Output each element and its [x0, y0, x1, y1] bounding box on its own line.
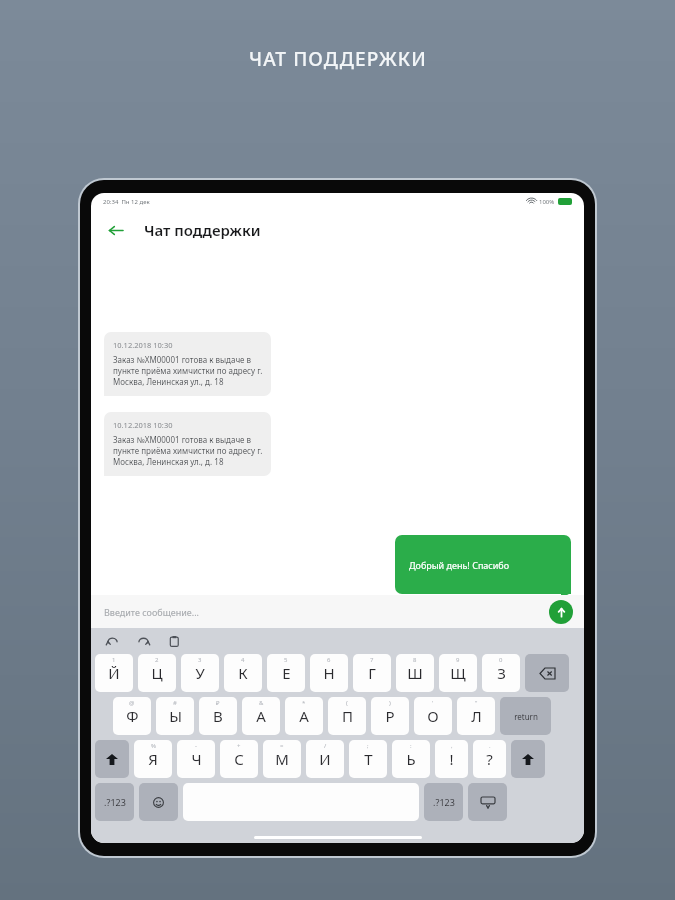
button[interactable]: 10.12.2018 10:30 — [104, 332, 271, 396]
button[interactable]: Г — [353, 654, 391, 692]
staticText: 1 — [112, 656, 116, 664]
button[interactable]: Я — [134, 740, 172, 778]
staticText: # — [173, 699, 177, 707]
button[interactable]: .?123 — [95, 783, 134, 821]
staticText: З — [497, 663, 506, 683]
staticText: " — [475, 699, 478, 707]
staticText: ЧАТ ПОДДЕРЖКИ — [249, 46, 427, 72]
button[interactable]: 10.12.2018 10:30 — [104, 412, 271, 476]
button[interactable]: С — [220, 740, 258, 778]
button[interactable]: .?123 — [424, 783, 463, 821]
staticText: Чат поддержки — [144, 220, 261, 240]
staticText: + — [237, 742, 241, 750]
staticText: 5 — [284, 656, 288, 664]
staticText: С — [234, 749, 244, 769]
staticText: & — [259, 699, 264, 707]
staticText: Л — [471, 706, 482, 726]
button[interactable]: ! — [435, 740, 468, 778]
button[interactable]: Щ — [439, 654, 477, 692]
staticText: ? — [486, 749, 493, 769]
button[interactable]: О — [414, 697, 452, 735]
button[interactable]: Отменить — [101, 630, 123, 652]
button[interactable]: Н — [310, 654, 348, 692]
staticText: return — [514, 711, 538, 722]
staticText: . — [489, 742, 491, 750]
staticText: 100% — [539, 198, 555, 206]
staticText: ( — [346, 699, 348, 707]
staticText: Я — [148, 749, 158, 769]
staticText: Введите сообщение... — [104, 606, 199, 618]
button[interactable]: return — [500, 697, 551, 735]
staticText: .?123 — [433, 796, 455, 808]
staticText: У — [195, 663, 205, 683]
button[interactable]: Key — [511, 740, 545, 778]
button[interactable]: Ч — [177, 740, 215, 778]
button[interactable]: ? — [473, 740, 506, 778]
staticText: : — [410, 742, 412, 750]
staticText: * — [302, 699, 306, 707]
staticText: @ — [129, 699, 135, 707]
staticText: 0 — [499, 656, 503, 664]
staticText: Ь — [406, 749, 416, 769]
staticText: 8 — [413, 656, 417, 664]
button[interactable]: П — [328, 697, 366, 735]
staticText: И — [319, 749, 331, 769]
staticText: ! — [449, 749, 454, 769]
staticText: Добрый день! Спасибо — [409, 559, 510, 571]
staticText: М — [275, 749, 289, 769]
staticText: К — [238, 663, 248, 683]
staticText: 7 — [370, 656, 374, 664]
button[interactable]: Повторить — [132, 630, 154, 652]
button[interactable]: У — [181, 654, 219, 692]
staticText: А — [299, 706, 309, 726]
button[interactable]: Ц — [138, 654, 176, 692]
button[interactable]: Key — [525, 654, 569, 692]
staticText: О — [427, 706, 439, 726]
staticText: % — [151, 742, 156, 750]
button[interactable]: Ы — [156, 697, 194, 735]
staticText: Заказ №XM00001 готова к выдаче в пункте … — [113, 434, 263, 467]
button[interactable]: Л — [457, 697, 495, 735]
staticText: Ы — [169, 706, 182, 726]
staticText: ' — [432, 699, 434, 707]
staticText: Ч — [191, 749, 202, 769]
button[interactable]: Key — [95, 740, 129, 778]
button[interactable]: Ш — [396, 654, 434, 692]
button[interactable]: В — [199, 697, 237, 735]
button[interactable]: Ф — [113, 697, 151, 735]
staticText: Ш — [407, 663, 423, 683]
staticText: Н — [323, 663, 335, 683]
staticText: В — [213, 706, 223, 726]
staticText: 10.12.2018 10:30 — [113, 420, 173, 430]
button[interactable]: А — [242, 697, 280, 735]
button[interactable]: Назад — [99, 214, 131, 246]
staticText: 4 — [241, 656, 245, 664]
button[interactable]: К — [224, 654, 262, 692]
staticText: - — [195, 742, 197, 750]
staticText: ; — [367, 742, 369, 750]
staticText: 10.12.2018 10:30 — [113, 340, 173, 350]
button[interactable]: Р — [371, 697, 409, 735]
staticText: Р — [385, 706, 395, 726]
button[interactable]: З — [482, 654, 520, 692]
button[interactable]: Отправить — [549, 600, 573, 624]
staticText: Щ — [450, 663, 466, 683]
button[interactable]: М — [263, 740, 301, 778]
staticText: 6 — [327, 656, 331, 664]
staticText: Г — [368, 663, 376, 683]
button[interactable]: Е — [267, 654, 305, 692]
button[interactable]: И — [306, 740, 344, 778]
button[interactable]: Добрый день! Спасибо — [395, 535, 571, 594]
staticText: А — [256, 706, 266, 726]
staticText: 3 — [198, 656, 202, 664]
button[interactable]: Key — [139, 783, 178, 821]
staticText: , — [451, 742, 453, 750]
button[interactable]: Т — [349, 740, 387, 778]
staticText: 20:34 Пн 12 дек — [103, 198, 150, 206]
button[interactable]: Key — [468, 783, 507, 821]
button[interactable]: Вставить — [163, 630, 185, 652]
button[interactable]: Й — [95, 654, 133, 692]
button[interactable]: Ь — [392, 740, 430, 778]
button[interactable]: А — [285, 697, 323, 735]
